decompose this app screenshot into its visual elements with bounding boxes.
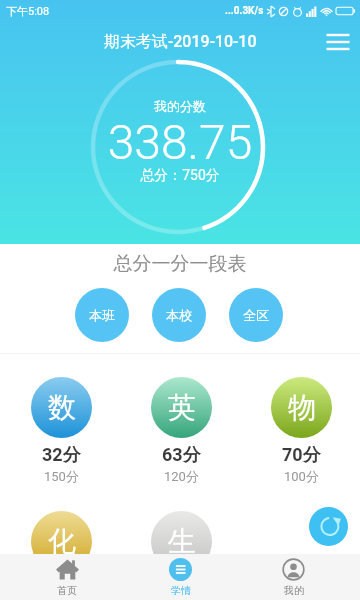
staticText: 学情 (171, 584, 191, 597)
staticText: 本班 (89, 307, 115, 323)
button[interactable]: 生 (151, 511, 212, 572)
staticText: 数 (48, 390, 76, 425)
button[interactable]: 首页 (10, 554, 124, 600)
button[interactable]: 本班 (75, 288, 129, 342)
button[interactable]: 全区 (229, 288, 283, 342)
staticText: 物 (288, 390, 316, 425)
staticText: 下午5:08 (6, 4, 50, 18)
button[interactable]: 物 (271, 377, 332, 484)
staticText: 总分一分一段表 (0, 252, 360, 276)
staticText: 338.75 (0, 114, 360, 170)
staticText: 我的 (284, 584, 304, 597)
staticText: 英 (168, 390, 196, 425)
button[interactable]: 本校 (152, 288, 206, 342)
staticText: 生 (168, 524, 196, 559)
button[interactable]: 学情 (124, 554, 237, 600)
staticText: 32分 (42, 444, 81, 467)
staticText: 63分 (162, 444, 201, 467)
staticText: 100分 (284, 468, 319, 484)
button[interactable]: 英 (151, 377, 212, 484)
staticText: 总分：750分 (0, 167, 360, 185)
staticText: 150分 (44, 468, 79, 484)
staticText: 全区 (243, 307, 269, 323)
staticText: ...0.3K/s (225, 5, 264, 17)
button[interactable]: 化 (31, 511, 92, 572)
staticText: 120分 (164, 468, 199, 484)
staticText: 70分 (282, 444, 321, 467)
button[interactable]: Refresh (309, 507, 348, 546)
staticText: 化 (48, 524, 76, 559)
staticText: 期末考试-2019-10-10 (104, 32, 257, 52)
staticText: 首页 (57, 584, 77, 597)
staticText: 我的分数 (0, 98, 360, 114)
button[interactable]: Menu (325, 29, 351, 55)
button[interactable]: 数 (31, 377, 92, 484)
staticText: 本校 (166, 307, 192, 323)
button[interactable]: 我的 (237, 554, 350, 600)
